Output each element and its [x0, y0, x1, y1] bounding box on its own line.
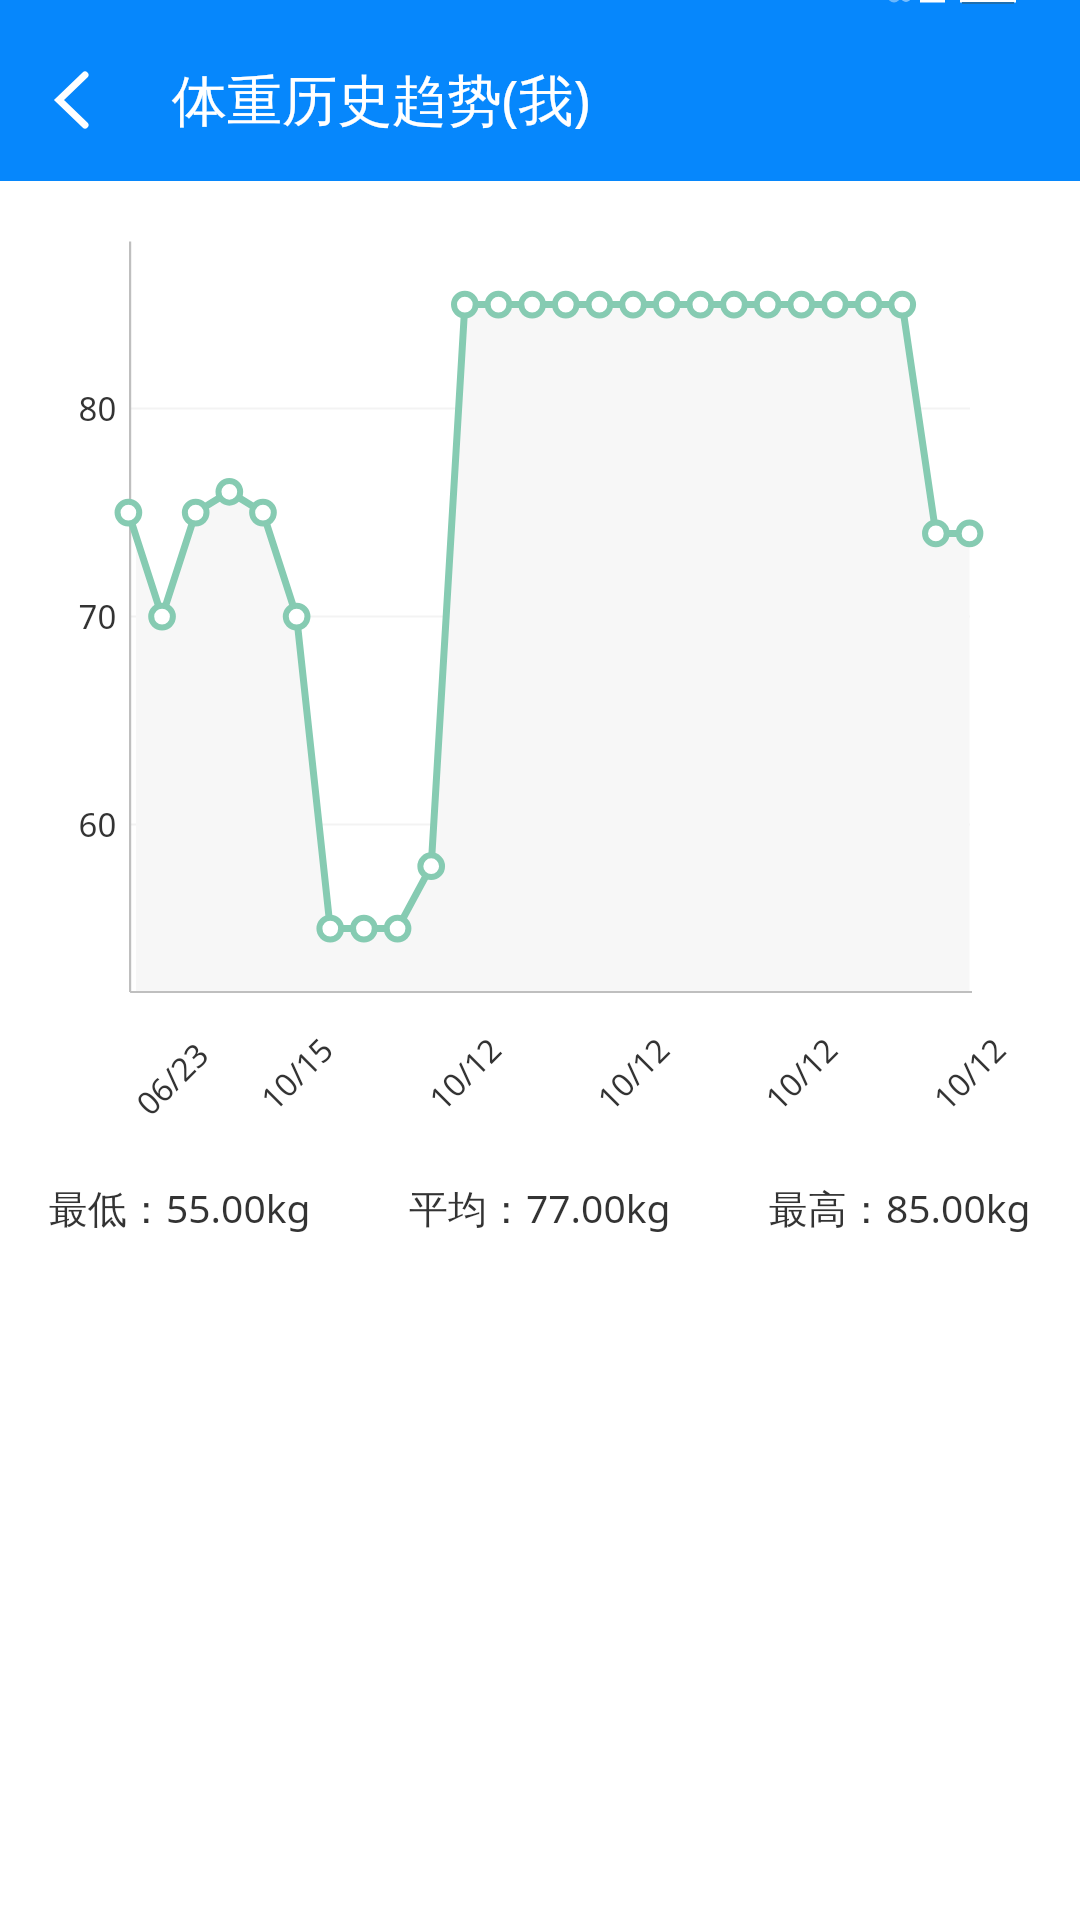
button[interactable]: Back	[14, 42, 130, 158]
staticText: 平均：77.00kg	[409, 1181, 671, 1234]
staticText: 最高：85.00kg	[769, 1181, 1031, 1234]
staticText: 体重历史趋势(我)	[172, 61, 591, 136]
staticText: 最低：55.00kg	[49, 1181, 311, 1234]
